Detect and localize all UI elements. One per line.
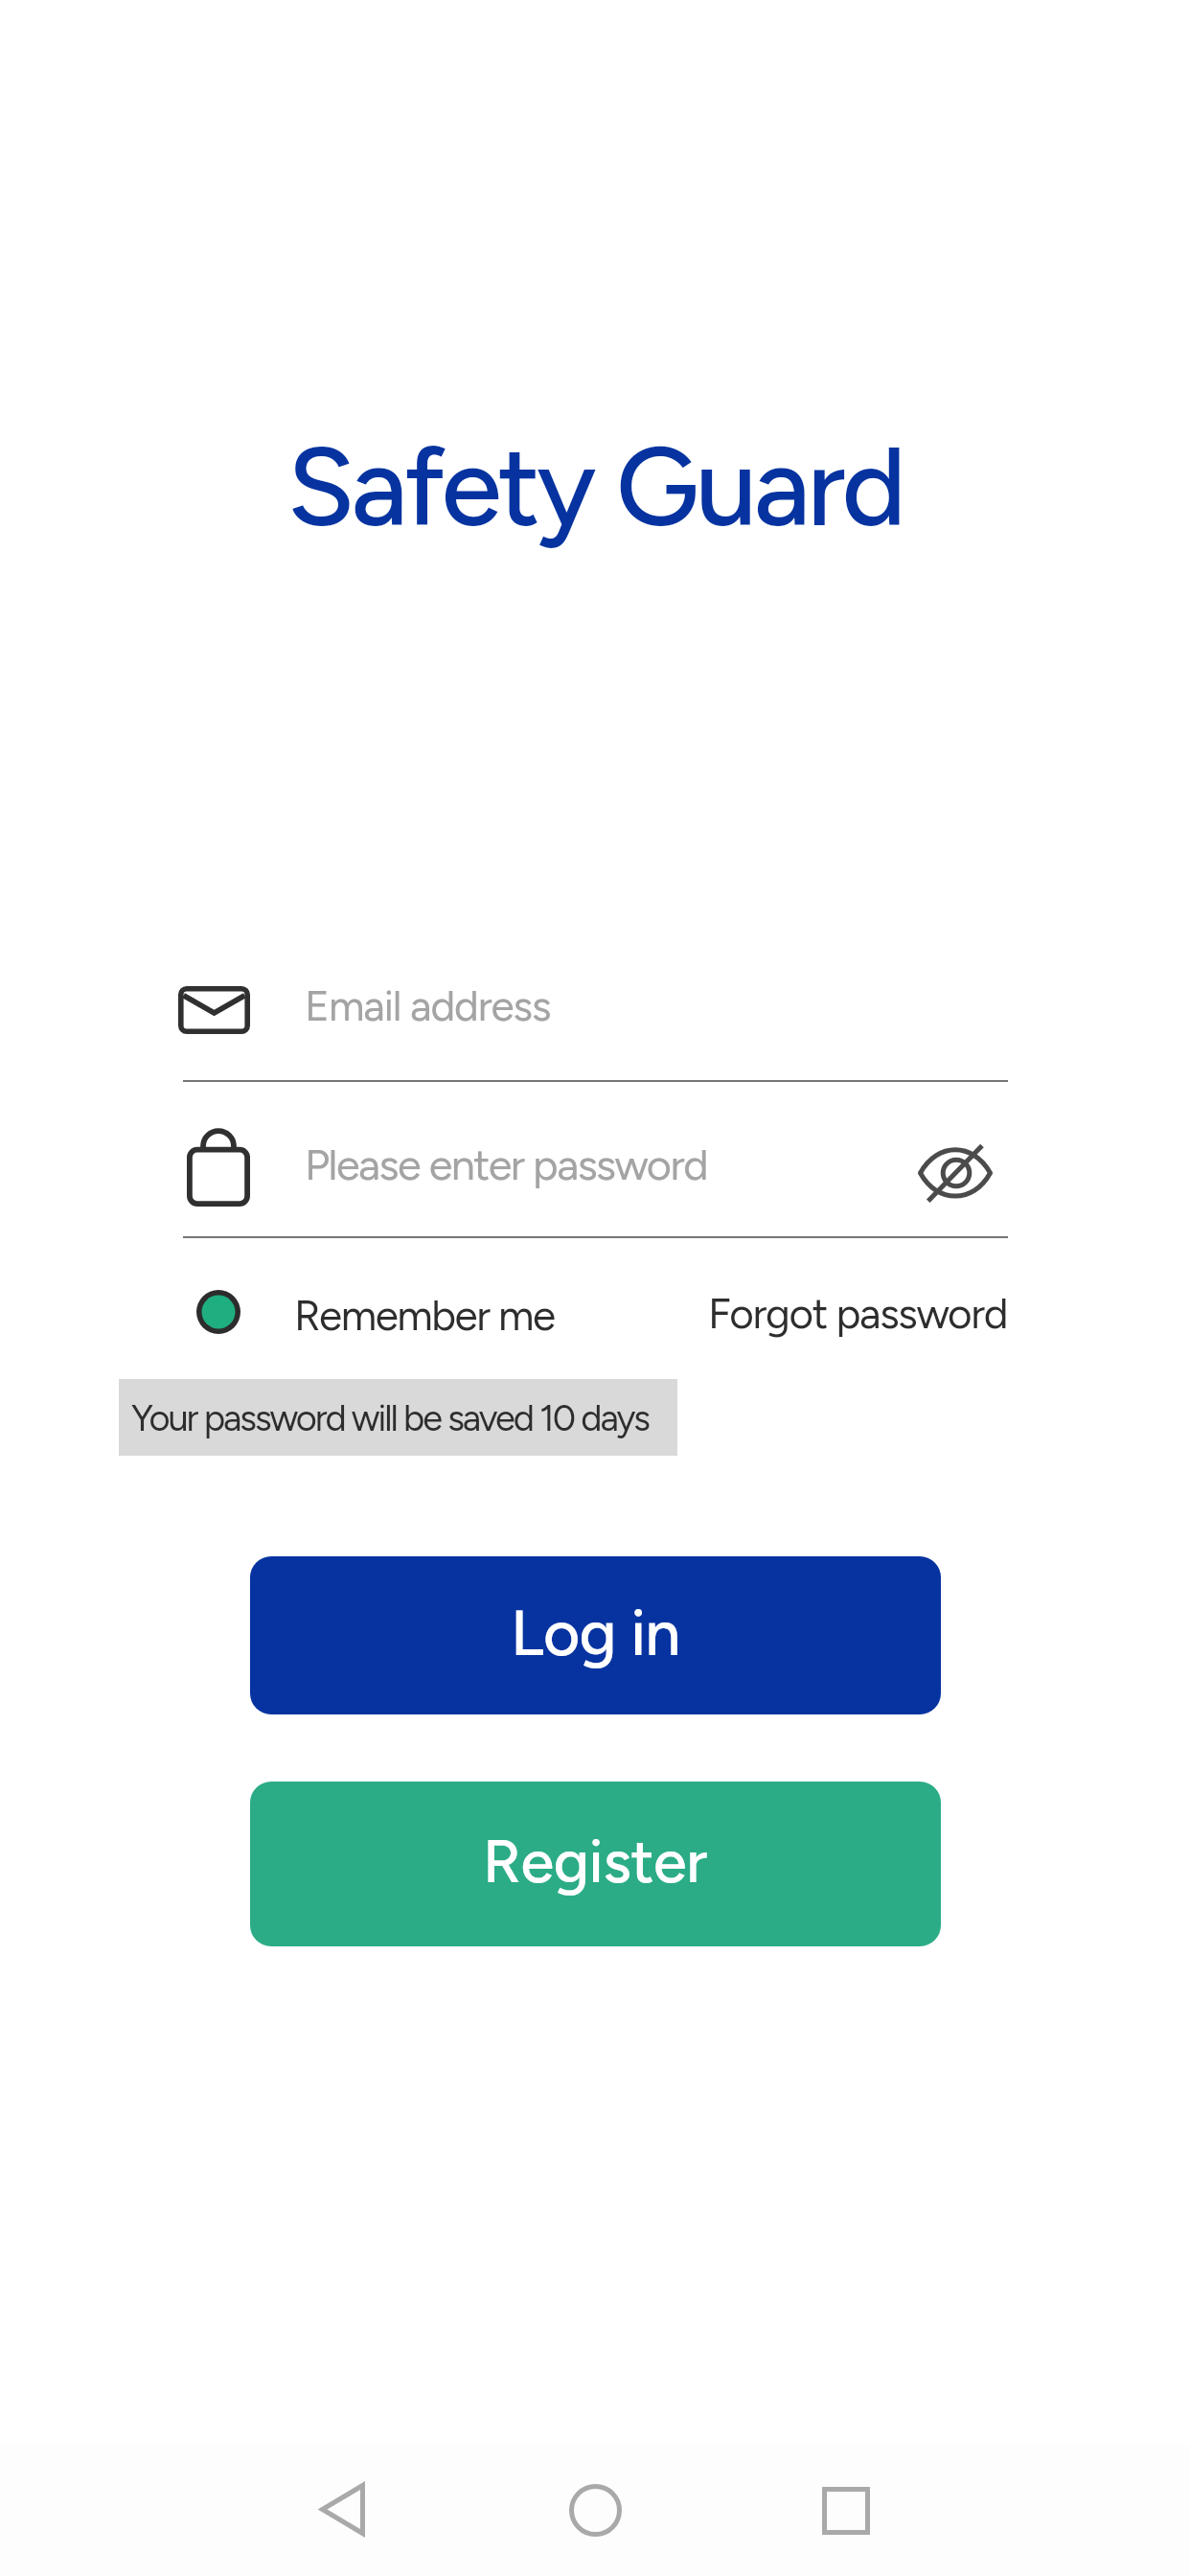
button[interactable]: Forgot password [708,1288,1008,1338]
button[interactable]: Recents [822,2487,870,2535]
staticText: Safety Guard [0,421,1190,553]
button[interactable]: Register [250,1782,941,1946]
button[interactable]: Home [569,2484,622,2537]
button[interactable]: Back [320,2483,365,2536]
staticText: Register [483,1825,708,1897]
button[interactable]: Show password [918,1146,993,1201]
button[interactable]: Log in [250,1556,941,1714]
staticText: Your password will be saved 10 days [131,1396,649,1440]
button[interactable]: Remember me [196,1290,555,1334]
staticText: Log in [511,1595,680,1670]
staticText: Please enter password [305,1138,708,1190]
staticText: Forgot password [708,1288,1008,1338]
button[interactable]: Password field [178,1116,897,1222]
staticText: Email address [305,980,551,1031]
button[interactable]: Email address field [178,958,1008,1064]
staticText: Remember me [294,1290,555,1334]
